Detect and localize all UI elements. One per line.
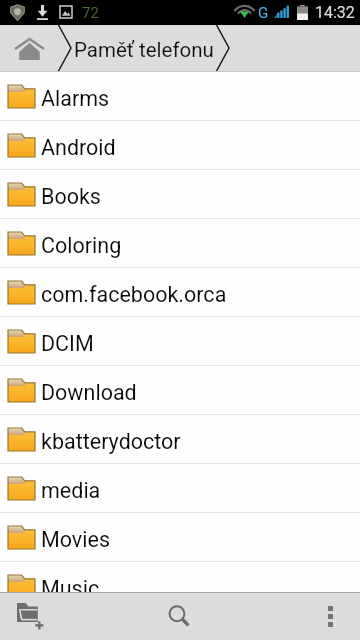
staticText: Alarms (41, 86, 110, 111)
button[interactable]: media (0, 464, 360, 512)
staticText: 14:32 (315, 3, 355, 22)
staticText: Coloring (41, 233, 122, 258)
staticText: Paměť telefonu (74, 38, 214, 62)
staticText: 72 (82, 4, 99, 22)
button[interactable]: Android (0, 121, 360, 169)
button[interactable]: New folder (0, 593, 58, 640)
button[interactable]: Alarms (0, 72, 360, 120)
button[interactable]: Home (0, 25, 58, 71)
staticText: media (41, 478, 101, 503)
button[interactable]: Music (0, 562, 360, 592)
button[interactable]: Coloring (0, 219, 360, 267)
button[interactable]: Paměť telefonu (71, 25, 214, 71)
staticText: Android (41, 135, 116, 160)
button[interactable]: DCIM (0, 317, 360, 365)
staticText: Books (41, 184, 101, 209)
button[interactable]: Download (0, 366, 360, 414)
staticText: DCIM (41, 331, 94, 356)
button[interactable]: More options (308, 593, 360, 640)
button[interactable]: Search (145, 593, 215, 640)
staticText: Music (41, 576, 100, 592)
staticText: G (258, 4, 269, 22)
button[interactable]: kbatterydoctor (0, 415, 360, 463)
staticText: com.facebook.orca (41, 282, 227, 307)
button[interactable]: com.facebook.orca (0, 268, 360, 316)
staticText: Movies (41, 527, 111, 552)
button[interactable]: Books (0, 170, 360, 218)
staticText: kbatterydoctor (41, 429, 181, 454)
staticText: Download (41, 380, 137, 405)
button[interactable]: Movies (0, 513, 360, 561)
